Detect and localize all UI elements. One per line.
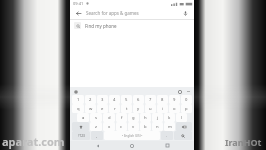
button[interactable]: p xyxy=(181,104,192,113)
button[interactable]: Shift xyxy=(72,122,89,131)
button[interactable]: Home xyxy=(125,141,139,150)
button[interactable]: b xyxy=(140,122,151,131)
button[interactable]: Search xyxy=(174,131,192,140)
staticText: k xyxy=(168,115,171,121)
staticText: 8 xyxy=(161,97,164,103)
staticText: n xyxy=(156,124,159,130)
staticText: m xyxy=(168,124,172,130)
staticText: ?123 xyxy=(78,134,85,138)
button[interactable]: 5 xyxy=(121,95,132,104)
button[interactable]: v xyxy=(128,122,139,131)
staticText: p xyxy=(185,106,188,112)
button[interactable]: h xyxy=(140,113,151,122)
staticText: t xyxy=(126,106,128,112)
button[interactable]: z xyxy=(90,122,102,131)
staticText: 7 xyxy=(149,97,152,103)
button[interactable]: 6 xyxy=(133,95,144,104)
staticText: aparat.com xyxy=(2,134,65,149)
button[interactable]: 3 xyxy=(97,95,108,104)
staticText: 4 xyxy=(113,97,116,103)
button[interactable]: m xyxy=(164,122,175,131)
staticText: v xyxy=(132,124,135,130)
staticText: f xyxy=(121,115,123,121)
staticText: u xyxy=(149,106,152,112)
staticText: 1 xyxy=(77,97,80,103)
button[interactable]: Emoji xyxy=(73,89,78,94)
staticText: 3 xyxy=(101,97,104,103)
button[interactable]: Settings xyxy=(177,89,182,94)
button[interactable]: w xyxy=(85,104,96,113)
button[interactable]: k xyxy=(164,113,175,122)
staticText: Find my phone xyxy=(85,23,117,29)
button[interactable]: e xyxy=(97,104,108,113)
staticText: j xyxy=(157,115,159,121)
button[interactable]: 1 xyxy=(72,95,84,104)
staticText: y xyxy=(137,106,140,112)
staticText: e xyxy=(101,106,104,112)
staticText: w xyxy=(89,106,93,112)
staticText: s xyxy=(95,115,98,121)
button[interactable]: r xyxy=(109,104,120,113)
staticText: , xyxy=(96,133,98,138)
button[interactable]: Find my phone xyxy=(70,20,194,31)
button[interactable]: Back xyxy=(91,141,105,150)
button[interactable]: o xyxy=(169,104,180,113)
button[interactable]: • English (US) • xyxy=(104,131,160,140)
button[interactable]: u xyxy=(145,104,156,113)
button[interactable]: 4 xyxy=(109,95,120,104)
staticText: c xyxy=(120,124,123,130)
staticText: . xyxy=(166,133,168,138)
button[interactable]: j xyxy=(152,113,163,122)
staticText: h xyxy=(144,115,147,121)
button[interactable]: 8 xyxy=(157,95,168,104)
button[interactable]: l xyxy=(176,113,187,122)
button[interactable]: y xyxy=(133,104,144,113)
staticText: x xyxy=(108,124,111,130)
staticText: Search for apps & games xyxy=(86,10,139,16)
button[interactable]: Search for apps & games xyxy=(86,10,181,16)
staticText: 2 xyxy=(89,97,92,103)
button[interactable]: c xyxy=(116,122,127,131)
staticText: z xyxy=(95,124,97,130)
staticText: d xyxy=(108,115,111,121)
staticText: • English (US) • xyxy=(122,134,143,138)
staticText: g xyxy=(132,115,135,121)
button[interactable]: a xyxy=(77,113,89,122)
button[interactable]: q xyxy=(72,104,84,113)
staticText: 6 xyxy=(137,97,140,103)
staticText: b xyxy=(144,124,147,130)
button[interactable]: t xyxy=(121,104,132,113)
staticText: l xyxy=(181,115,183,121)
button[interactable]: 9 xyxy=(169,95,180,104)
staticText: 5 xyxy=(125,97,128,103)
button[interactable]: s xyxy=(90,113,102,122)
staticText: r xyxy=(114,106,116,112)
button[interactable]: ?123 xyxy=(72,131,90,140)
button[interactable]: Voice search xyxy=(181,9,190,18)
button[interactable]: f xyxy=(116,113,127,122)
button[interactable]: 2 xyxy=(85,95,96,104)
staticText: q xyxy=(77,106,80,112)
staticText: i xyxy=(162,106,164,112)
button[interactable]: x xyxy=(103,122,115,131)
button[interactable]: , xyxy=(91,131,103,140)
staticText: o xyxy=(173,106,176,112)
button[interactable]: n xyxy=(152,122,163,131)
staticText: IranHOt xyxy=(225,136,262,148)
button[interactable]: 0 xyxy=(181,95,192,104)
button[interactable]: g xyxy=(128,113,139,122)
button[interactable]: Back xyxy=(74,9,83,18)
staticText: 0 xyxy=(185,97,188,103)
staticText: 9 xyxy=(173,97,176,103)
button[interactable]: Backspace xyxy=(176,122,192,131)
button[interactable]: Recents xyxy=(160,141,174,150)
button[interactable]: 7 xyxy=(145,95,156,104)
button[interactable]: i xyxy=(157,104,168,113)
staticText: 09:41 xyxy=(73,1,84,6)
staticText: a xyxy=(82,115,85,121)
button[interactable]: d xyxy=(103,113,115,122)
button[interactable]: More xyxy=(186,89,191,94)
